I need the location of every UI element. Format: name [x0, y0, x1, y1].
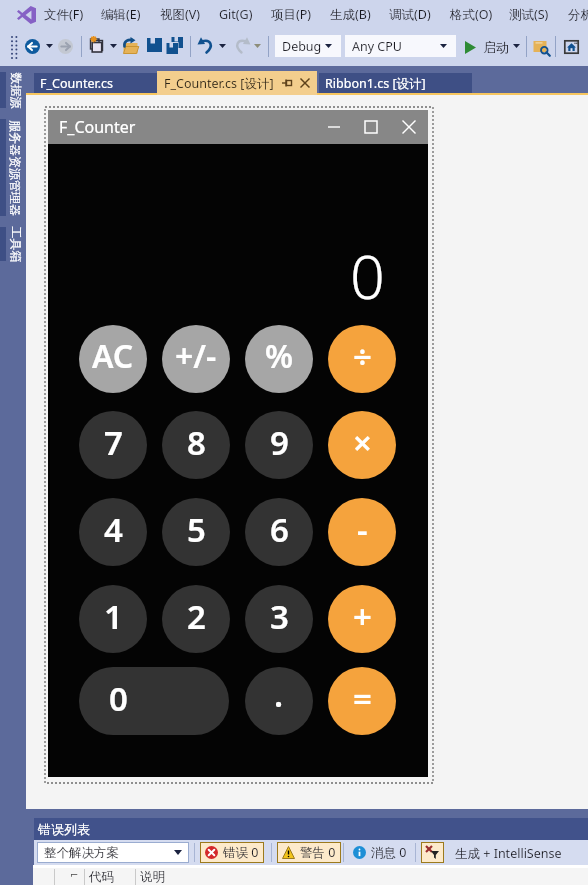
staticText: % — [265, 334, 294, 378]
button[interactable]: Filter — [421, 842, 444, 863]
staticText: AC — [92, 334, 134, 378]
button[interactable]: 分析(N) — [561, 3, 588, 26]
staticText: 格式(O) — [450, 6, 493, 23]
button[interactable]: 编辑(E) — [94, 3, 148, 26]
staticText: 工具箱 — [8, 226, 23, 262]
button[interactable]: New item — [89, 36, 105, 52]
button[interactable]: More options — [249, 37, 265, 55]
button[interactable]: More options — [105, 37, 121, 55]
staticText: + — [353, 594, 372, 639]
button[interactable]: 数据源 — [0, 72, 26, 108]
staticText: 说明 — [140, 869, 165, 885]
staticText: 1 — [104, 594, 123, 639]
button[interactable]: × — [328, 411, 396, 479]
button[interactable]: 1 — [79, 585, 147, 653]
button[interactable]: 错误 0 — [200, 842, 264, 863]
button[interactable]: - — [328, 498, 396, 566]
button[interactable]: Ribbon1.cs [设计] — [319, 73, 472, 93]
staticText: 调试(D) — [389, 6, 431, 23]
button[interactable]: 8 — [162, 411, 230, 479]
button[interactable]: 0 — [79, 667, 229, 735]
staticText: 2 — [187, 594, 206, 639]
button[interactable]: 启动 — [462, 36, 512, 58]
staticText: = — [353, 676, 372, 721]
staticText: Any CPU — [352, 38, 402, 55]
button[interactable]: Open — [123, 38, 139, 54]
staticText: 服务器资源管理器 — [8, 120, 23, 216]
staticText: 生成 + IntelliSense — [455, 845, 562, 862]
button[interactable]: 4 — [79, 498, 147, 566]
button[interactable]: Save — [146, 36, 163, 53]
button[interactable]: 视图(V) — [153, 3, 208, 26]
staticText: - — [357, 507, 368, 552]
button[interactable]: 生成(B) — [323, 3, 378, 26]
button[interactable]: 警告 0 — [277, 842, 341, 863]
staticText: ÷ — [353, 334, 372, 379]
button[interactable]: 项目(P) — [264, 3, 319, 26]
button[interactable]: 3 — [245, 585, 313, 653]
button[interactable]: 工具箱 — [0, 227, 26, 261]
staticText: 启动 — [483, 39, 509, 55]
button[interactable]: Save all — [165, 36, 184, 55]
button[interactable]: 9 — [245, 411, 313, 479]
button[interactable]: + — [328, 585, 396, 653]
staticText: Ribbon1.cs [设计] — [325, 75, 426, 92]
button[interactable]: Any CPU — [345, 35, 456, 57]
button[interactable]: 调试(D) — [382, 3, 438, 26]
staticText: 错误 0 — [223, 844, 259, 861]
button[interactable]: More options — [214, 37, 230, 55]
staticText: 8 — [187, 420, 206, 465]
button[interactable]: Search in folder — [533, 40, 551, 58]
button[interactable]: . — [245, 667, 313, 735]
staticText: F_Counter.cs [设计] — [164, 75, 274, 92]
staticText: +/- — [175, 334, 217, 378]
button[interactable]: AC — [79, 325, 147, 393]
button[interactable]: Maximize — [352, 110, 389, 144]
button[interactable]: Navigate back — [25, 39, 40, 54]
button[interactable]: Undo — [197, 36, 215, 54]
staticText: 测试(S) — [509, 6, 549, 23]
button[interactable]: 格式(O) — [443, 3, 500, 26]
button[interactable]: Navigate forward — [58, 39, 73, 54]
staticText: 错误列表 — [38, 821, 90, 837]
staticText: 文件(F) — [44, 6, 84, 23]
staticText: . — [274, 672, 284, 717]
button[interactable]: Minimize — [315, 110, 352, 144]
button[interactable]: 6 — [245, 498, 313, 566]
button[interactable]: 整个解决方案 — [37, 842, 189, 863]
button[interactable]: F_Counter.cs [设计] — [157, 71, 317, 95]
button[interactable]: More options — [41, 37, 57, 55]
staticText: 7 — [104, 420, 123, 465]
button[interactable]: 测试(S) — [502, 3, 556, 26]
button[interactable]: +/- — [162, 325, 230, 393]
button[interactable]: Git(G) — [212, 3, 260, 26]
staticText: 9 — [270, 420, 289, 465]
button[interactable]: 2 — [162, 585, 230, 653]
button[interactable]: More options — [508, 37, 524, 55]
staticText: 生成(B) — [330, 6, 371, 23]
button[interactable]: 错误列表 — [34, 818, 588, 840]
button[interactable]: Home — [564, 40, 579, 55]
button[interactable]: F_Counter.cs — [34, 73, 157, 93]
button[interactable]: 文件(F) — [37, 3, 91, 26]
staticText: 代码 — [89, 869, 114, 885]
staticText: 项目(P) — [271, 6, 312, 23]
staticText: 编辑(E) — [101, 6, 141, 23]
button[interactable]: Close — [389, 110, 428, 144]
staticText: 数据源 — [8, 72, 23, 108]
button[interactable]: ÷ — [328, 325, 396, 393]
button[interactable]: % — [245, 325, 313, 393]
button[interactable]: = — [328, 667, 396, 735]
staticText: 4 — [104, 507, 123, 552]
staticText: × — [353, 420, 372, 465]
button[interactable]: Redo — [233, 36, 251, 54]
button[interactable]: 服务器资源管理器 — [0, 119, 26, 216]
button[interactable]: 7 — [79, 411, 147, 479]
staticText: 警告 0 — [300, 844, 336, 861]
staticText: 分析(N) — [568, 6, 588, 23]
button[interactable]: 5 — [162, 498, 230, 566]
staticText: Debug — [282, 38, 322, 55]
staticText: 5 — [187, 507, 206, 552]
button[interactable]: Debug — [275, 35, 341, 57]
button[interactable]: 消息 0 — [348, 842, 412, 863]
